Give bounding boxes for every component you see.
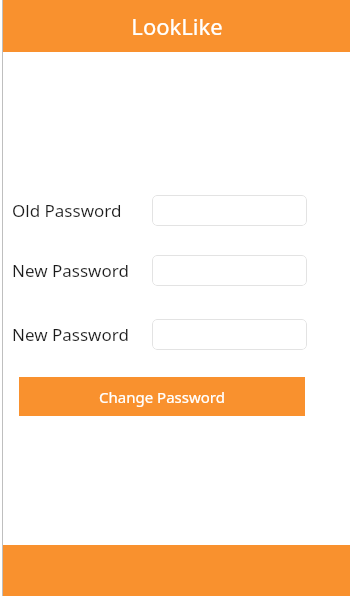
staticText: New Password xyxy=(12,323,129,346)
button[interactable]: New Password xyxy=(0,316,350,352)
button[interactable]: New Password xyxy=(152,255,307,286)
staticText: New Password xyxy=(12,259,129,282)
button[interactable]: Change Password xyxy=(19,377,305,416)
button[interactable]: Old Password xyxy=(0,192,350,228)
staticText: LookLike xyxy=(131,11,223,41)
staticText: Change Password xyxy=(99,387,225,407)
button[interactable]: New Password xyxy=(152,319,307,350)
staticText: Old Password xyxy=(12,199,122,222)
button[interactable]: Old Password xyxy=(152,195,307,226)
button[interactable]: New Password xyxy=(0,252,350,288)
